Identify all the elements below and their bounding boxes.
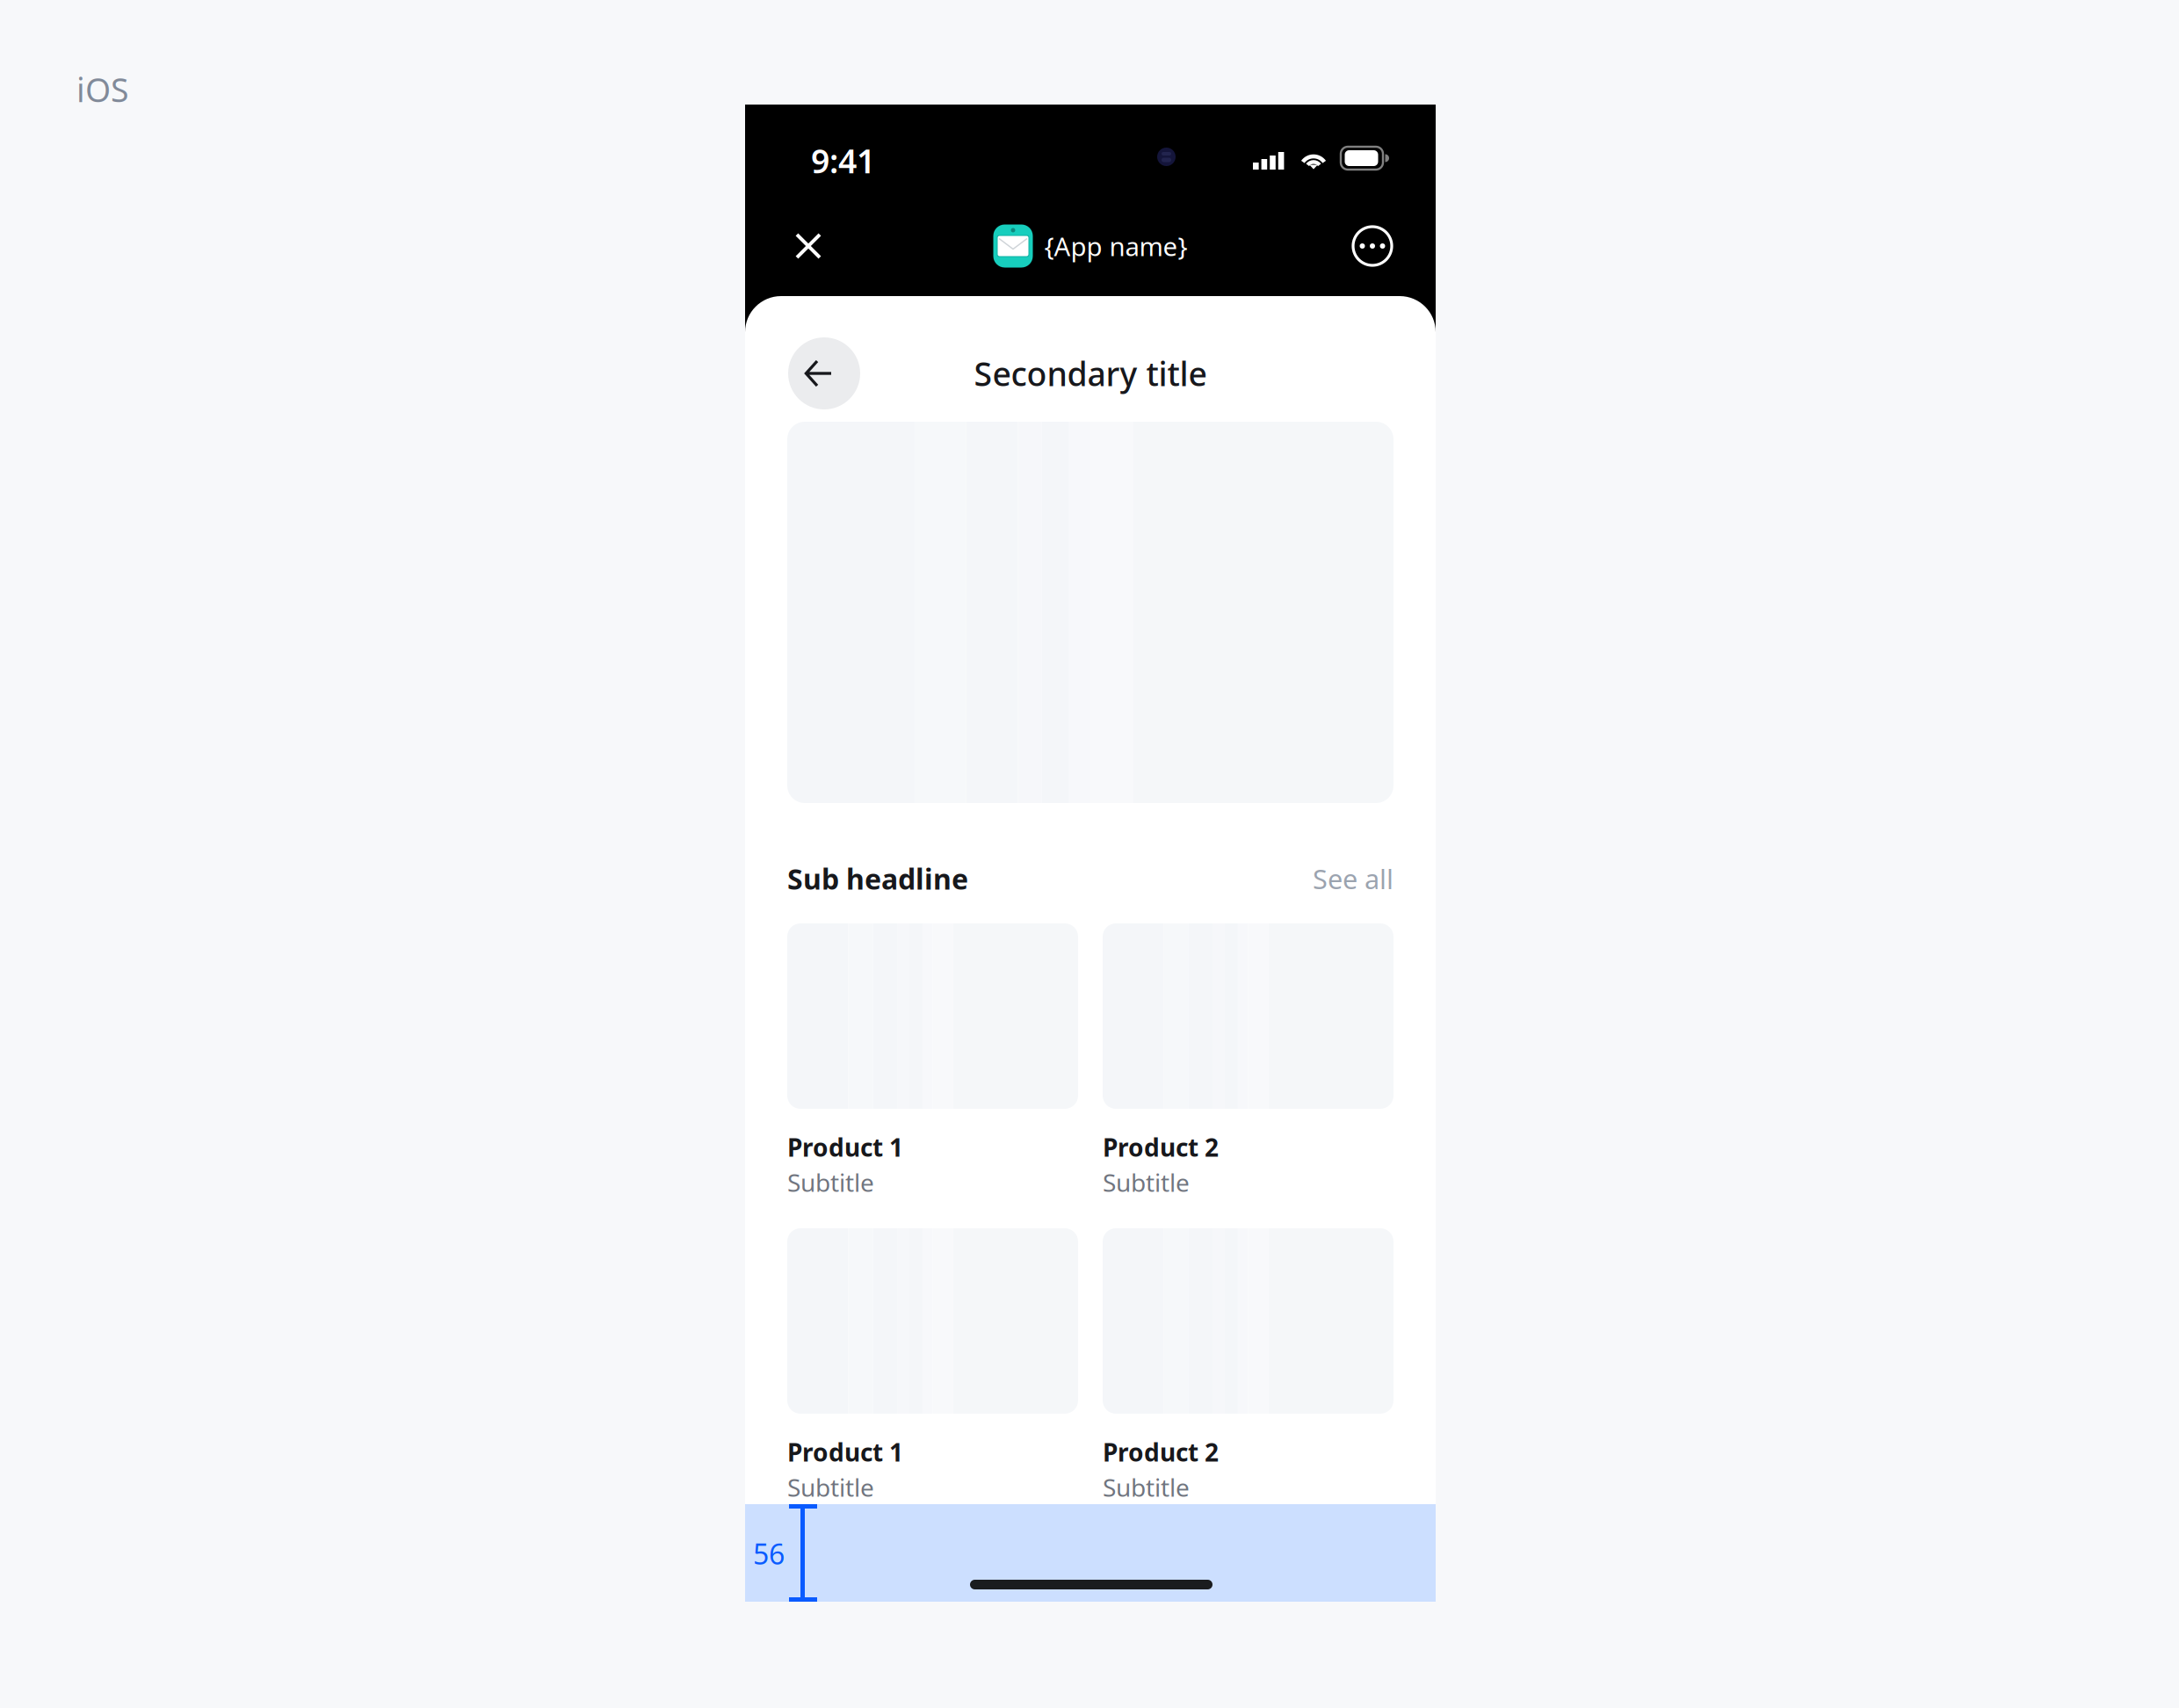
button[interactable]: See all xyxy=(1313,861,1394,896)
button[interactable]: Close xyxy=(781,219,836,273)
staticText: Subtitle xyxy=(787,1471,874,1503)
button[interactable]: Product 2 xyxy=(1103,923,1394,1174)
staticText: iOS xyxy=(76,68,128,111)
button[interactable]: Product 2 xyxy=(1103,1228,1394,1479)
button[interactable]: Back xyxy=(788,337,860,409)
staticText: Product 1 xyxy=(787,1131,903,1163)
button[interactable]: Product 1 xyxy=(787,1228,1078,1479)
staticText: Product 1 xyxy=(787,1436,903,1468)
staticText: Sub headline xyxy=(787,860,968,897)
button[interactable]: Product 1 xyxy=(787,923,1078,1174)
staticText: Product 2 xyxy=(1103,1131,1219,1163)
staticText: {App name} xyxy=(1044,229,1187,263)
staticText: Subtitle xyxy=(1103,1471,1190,1503)
staticText: Product 2 xyxy=(1103,1436,1219,1468)
staticText: See all xyxy=(1313,861,1394,896)
button[interactable]: More options xyxy=(1345,219,1400,273)
staticText: 9:41 xyxy=(811,139,875,182)
staticText: Secondary title xyxy=(974,352,1207,395)
staticText: 56 xyxy=(753,1535,785,1572)
staticText: Subtitle xyxy=(787,1166,874,1199)
staticText: Subtitle xyxy=(1103,1166,1190,1199)
